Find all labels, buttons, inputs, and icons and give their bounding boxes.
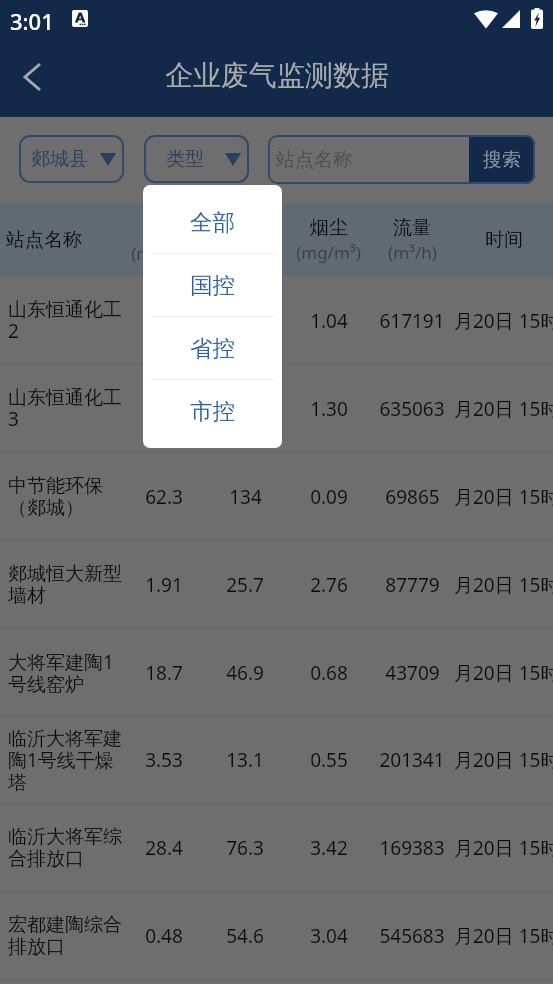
staticText: 1.91 [145,572,183,598]
staticText: 1.04 [310,308,348,334]
button[interactable]: 省控 [143,317,282,379]
staticText: 43709 [385,660,440,686]
button[interactable]: 全部 [143,191,282,253]
staticText: 635063 [379,396,445,422]
staticText: 43.8 [226,396,264,422]
staticText: 月20日 15时 [454,308,553,334]
staticText: 0.55 [310,747,348,773]
staticText: 搜索 [483,148,521,172]
staticText: 62.3 [145,484,183,510]
staticText: 流量 [393,216,431,240]
staticText: 169383 [379,835,445,861]
button[interactable]: 市控 [143,380,282,442]
button[interactable]: Back [5,57,59,97]
staticText: 烟尘 [310,216,348,240]
staticText: 月20日 15时 [454,835,553,861]
staticText: 3.53 [145,747,183,773]
staticText: 时间 [485,228,523,252]
staticText: 201341 [379,747,445,773]
staticText: 25.7 [226,572,264,598]
button[interactable]: 类型 [144,135,249,183]
staticText: 3:01 [10,6,54,36]
staticText: 月20日 15时 [454,660,553,686]
staticText: 0.68 [310,660,348,686]
staticText: (mg/m³) [296,241,361,264]
staticText: 54.6 [226,923,264,949]
staticText: 山东恒通化工3 [8,386,124,432]
button[interactable]: 搜索 [469,135,535,184]
staticText: 0.48 [145,923,183,949]
staticText: 18.7 [145,660,183,686]
staticText: (mg/m³) [131,242,196,265]
staticText: 2.76 [310,572,348,598]
staticText: 山东恒通化工2 [8,298,124,344]
staticText: 站点名称 [6,228,82,252]
staticText: 月20日 15时 [454,572,553,598]
button[interactable]: 宏都建陶综合排放口 [0,892,553,980]
staticText: 69865 [385,484,440,510]
staticText: 46.9 [226,660,264,686]
staticText: 全部 [190,208,235,236]
button[interactable]: 山东恒通化工2 [0,277,553,365]
staticText: 临沂大将军建陶1号线干燥塔 [8,727,124,794]
staticText: 临沂大将军综合排放口 [8,825,124,870]
staticText: 类型 [166,147,204,171]
button[interactable]: 中节能环保（郯城） [0,453,553,541]
staticText: 郯城县 [31,147,88,171]
staticText: 企业废气监测数据 [165,58,389,93]
staticText: NOx [225,215,265,241]
staticText: 617191 [379,308,445,334]
staticText: 134 [229,484,262,510]
staticText: 13.1 [226,747,264,773]
staticText: 87779 [385,572,440,598]
staticText: 宏都建陶综合排放口 [8,913,124,958]
staticText: 月20日 15时 [454,484,553,510]
staticText: 76.3 [226,835,264,861]
button[interactable]: 国控 [143,254,282,316]
staticText: 3.04 [310,923,348,949]
staticText: 市控 [190,397,235,425]
staticText: 国控 [190,271,235,299]
staticText: 郯城恒大新型墙材 [8,562,124,607]
staticText: 545683 [379,923,445,949]
button[interactable]: 大将军建陶1号线窑炉 [0,629,553,717]
staticText: 月20日 15时 [454,747,553,773]
button[interactable]: 郯城县 [19,135,124,183]
button[interactable]: 临沂大将军建陶1号线干燥塔 [0,717,553,804]
staticText: 中节能环保（郯城） [8,474,124,519]
staticText: 1.30 [310,396,348,422]
staticText: (m³/h) [388,241,437,264]
button[interactable]: 临沂大将军综合排放口 [0,804,553,892]
staticText: 月20日 15时 [454,923,553,949]
staticText: 省控 [190,334,235,362]
staticText: 0.09 [310,484,348,510]
staticText: 月20日 15时 [454,396,553,422]
staticText: 站点名称 [276,148,352,172]
button[interactable]: 山东恒通化工3 [0,365,553,453]
staticText: 28.4 [145,835,183,861]
button[interactable]: 郯城恒大新型墙材 [0,541,553,629]
staticText: 3.42 [310,835,348,861]
staticText: 大将军建陶1号线窑炉 [8,649,124,696]
